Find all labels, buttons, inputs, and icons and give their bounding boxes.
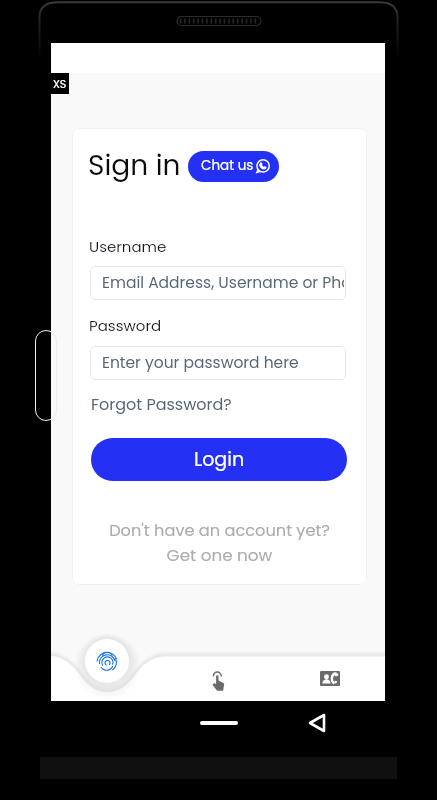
staticText: Don't have an account yet? bbox=[72, 519, 367, 542]
staticText: Enter your password here bbox=[102, 352, 299, 374]
button[interactable]: Chat us bbox=[188, 151, 279, 182]
button[interactable]: Email Address, Username or Phone bbox=[90, 266, 346, 300]
button[interactable]: Get one now bbox=[72, 543, 367, 567]
staticText: Forgot Password? bbox=[91, 393, 232, 415]
button[interactable]: Login bbox=[91, 438, 347, 481]
staticText: Username bbox=[89, 236, 167, 257]
staticText: XS bbox=[53, 76, 67, 91]
button[interactable]: Fingerprint login bbox=[85, 639, 129, 683]
button[interactable]: Touch bbox=[190, 659, 246, 705]
button[interactable]: Contacts bbox=[302, 657, 358, 699]
staticText: Sign in bbox=[88, 146, 181, 185]
staticText: Chat us bbox=[201, 156, 254, 175]
staticText: Login bbox=[194, 446, 245, 473]
staticText: Get one now bbox=[72, 543, 367, 567]
staticText: Password bbox=[89, 315, 162, 336]
staticText: Email Address, Username or Phone bbox=[102, 272, 344, 294]
button[interactable]: Enter your password here bbox=[90, 346, 346, 380]
button[interactable]: Forgot Password? bbox=[91, 393, 232, 415]
